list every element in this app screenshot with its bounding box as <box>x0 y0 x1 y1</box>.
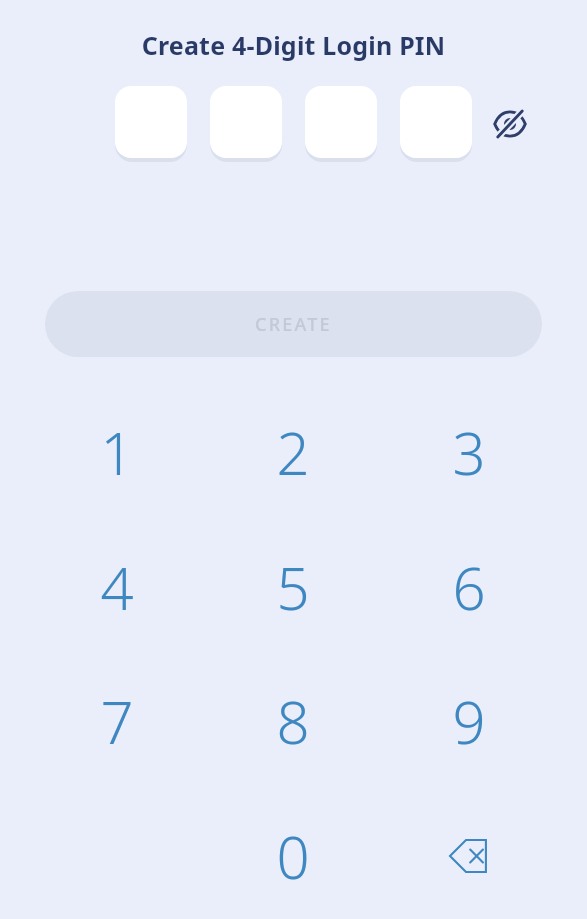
staticText: 7 <box>100 682 134 761</box>
button[interactable] <box>400 86 472 158</box>
staticText: 5 <box>276 548 310 627</box>
button[interactable]: CREATE <box>45 291 542 357</box>
button[interactable]: 6 <box>394 527 544 647</box>
staticText: 6 <box>452 548 486 627</box>
staticText: 1 <box>100 413 134 492</box>
button[interactable]: 8 <box>218 661 368 781</box>
staticText: 9 <box>452 682 486 761</box>
staticText: 4 <box>100 548 134 627</box>
button[interactable]: 9 <box>394 661 544 781</box>
staticText: 0 <box>276 817 310 896</box>
button[interactable]: 3 <box>394 392 544 512</box>
staticText: 2 <box>276 413 310 492</box>
button[interactable]: 7 <box>42 661 192 781</box>
button[interactable]: 0 <box>218 796 368 916</box>
button[interactable]: 1 <box>42 392 192 512</box>
staticText: 8 <box>276 682 310 761</box>
button[interactable]: 5 <box>218 527 368 647</box>
staticText: CREATE <box>255 312 332 337</box>
staticText: Create 4-Digit Login PIN <box>0 28 587 62</box>
staticText: 3 <box>452 413 486 492</box>
button[interactable] <box>115 86 187 158</box>
button[interactable] <box>210 86 282 158</box>
button[interactable] <box>305 86 377 158</box>
button[interactable]: 2 <box>218 392 368 512</box>
button[interactable]: Show PIN <box>486 100 534 148</box>
button[interactable]: 4 <box>42 527 192 647</box>
button[interactable]: Backspace <box>394 796 544 916</box>
